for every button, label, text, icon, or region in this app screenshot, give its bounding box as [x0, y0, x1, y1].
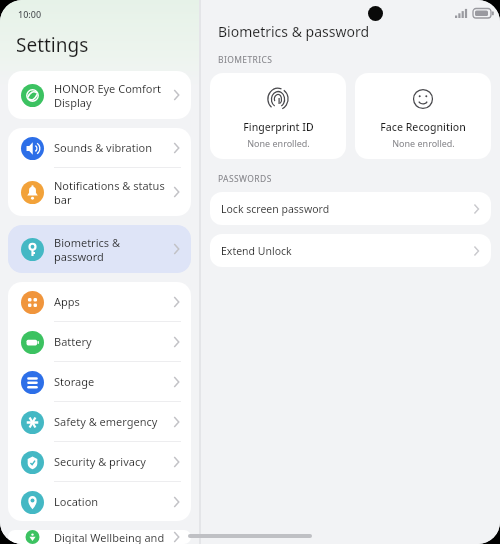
other: Fingerprint ID	[267, 88, 289, 110]
button[interactable]: Storage	[8, 362, 191, 401]
staticText: PASSWORDS	[218, 173, 272, 185]
button[interactable]: Fingerprint ID	[210, 73, 346, 159]
staticText: HONOR Eye Comfort Display	[54, 81, 170, 110]
staticText: Digital Wellbeing and parental controls	[54, 530, 170, 544]
staticText: Sounds & vibration	[54, 140, 170, 155]
button[interactable]: Biometrics & password	[8, 225, 191, 273]
staticText: Fingerprint ID	[243, 120, 314, 134]
button[interactable]: Location	[8, 482, 191, 521]
button[interactable]: Apps	[8, 282, 191, 321]
staticText: None enrolled.	[392, 137, 455, 149]
staticText: Apps	[54, 294, 170, 309]
button[interactable]: Battery	[8, 322, 191, 361]
button[interactable]: Extend Unlock	[210, 234, 491, 267]
button[interactable]: Sounds & vibration	[8, 128, 191, 167]
staticText: Battery	[54, 334, 170, 349]
staticText: Safety & emergency	[54, 414, 170, 429]
button[interactable]: Digital Wellbeing and parental controls	[8, 530, 191, 544]
staticText: None enrolled.	[247, 137, 310, 149]
staticText: Security & privacy	[54, 454, 170, 469]
staticText: Settings	[16, 32, 89, 58]
staticText: Lock screen password	[221, 202, 470, 216]
button[interactable]: Security & privacy	[8, 442, 191, 481]
staticText: Location	[54, 494, 170, 509]
staticText: BIOMETRICS	[218, 54, 273, 66]
staticText: Face Recognition	[380, 120, 466, 134]
button[interactable]: HONOR Eye Comfort Display	[8, 71, 191, 119]
staticText: 10:00	[18, 8, 42, 20]
staticText: Extend Unlock	[221, 244, 470, 258]
staticText: Storage	[54, 374, 170, 389]
button[interactable]: Lock screen password	[210, 192, 491, 225]
staticText: Notifications & status bar	[54, 178, 170, 207]
button[interactable]: Notifications & status bar	[8, 168, 191, 216]
other: Face Recognition	[412, 88, 434, 110]
staticText: Biometrics & password	[218, 22, 370, 41]
button[interactable]: Face Recognition	[355, 73, 491, 159]
button[interactable]: Safety & emergency	[8, 402, 191, 441]
staticText: Biometrics & password	[54, 235, 170, 264]
